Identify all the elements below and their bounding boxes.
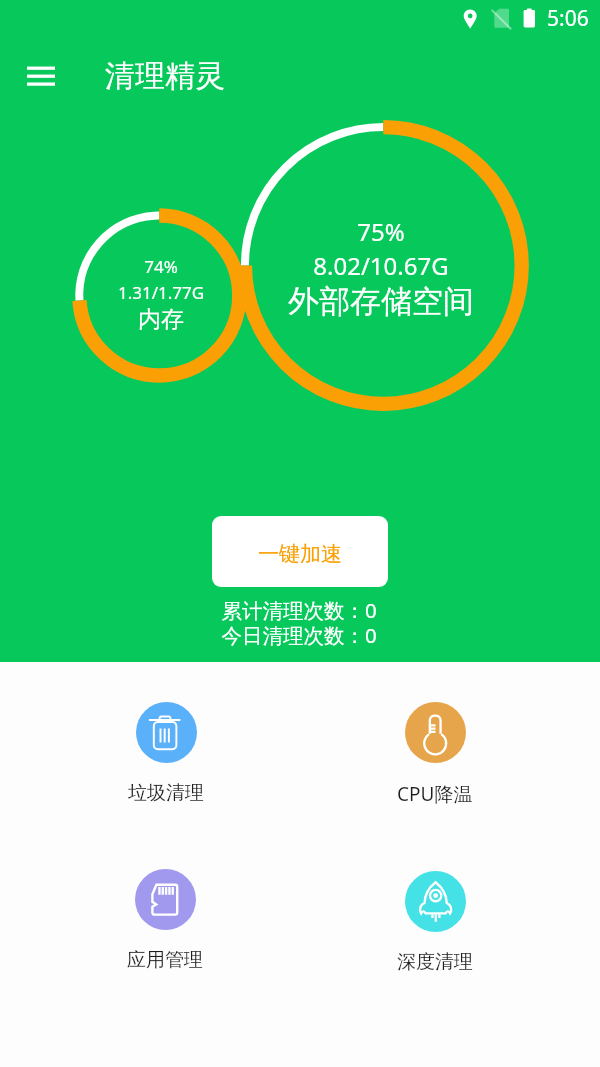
button[interactable]: 垃圾清理 bbox=[96, 702, 236, 805]
staticText: 8.02/10.67G bbox=[231, 249, 531, 282]
button[interactable]: CPU降温 bbox=[365, 702, 505, 807]
staticText: 74% bbox=[11, 255, 311, 278]
button[interactable]: Menu bbox=[17, 52, 65, 100]
staticText: 一键加速 bbox=[258, 541, 342, 567]
staticText: CPU降温 bbox=[397, 781, 473, 807]
staticText: 垃圾清理 bbox=[128, 781, 204, 805]
staticText: 5:06 bbox=[547, 4, 589, 33]
staticText: 内存 bbox=[11, 305, 311, 334]
staticText: 今日清理次数：0 bbox=[149, 621, 449, 649]
staticText: 75% bbox=[231, 215, 531, 248]
button[interactable]: 一键加速 bbox=[212, 516, 388, 587]
staticText: 应用管理 bbox=[127, 948, 203, 972]
staticText: 清理精灵 bbox=[105, 57, 225, 95]
staticText: 累计清理次数：0 bbox=[149, 596, 449, 624]
button[interactable]: 深度清理 bbox=[365, 871, 505, 974]
button[interactable]: 应用管理 bbox=[95, 869, 235, 972]
staticText: 深度清理 bbox=[397, 950, 473, 974]
staticText: 外部存储空间 bbox=[231, 282, 531, 321]
staticText: 1.31/1.77G bbox=[11, 281, 311, 304]
